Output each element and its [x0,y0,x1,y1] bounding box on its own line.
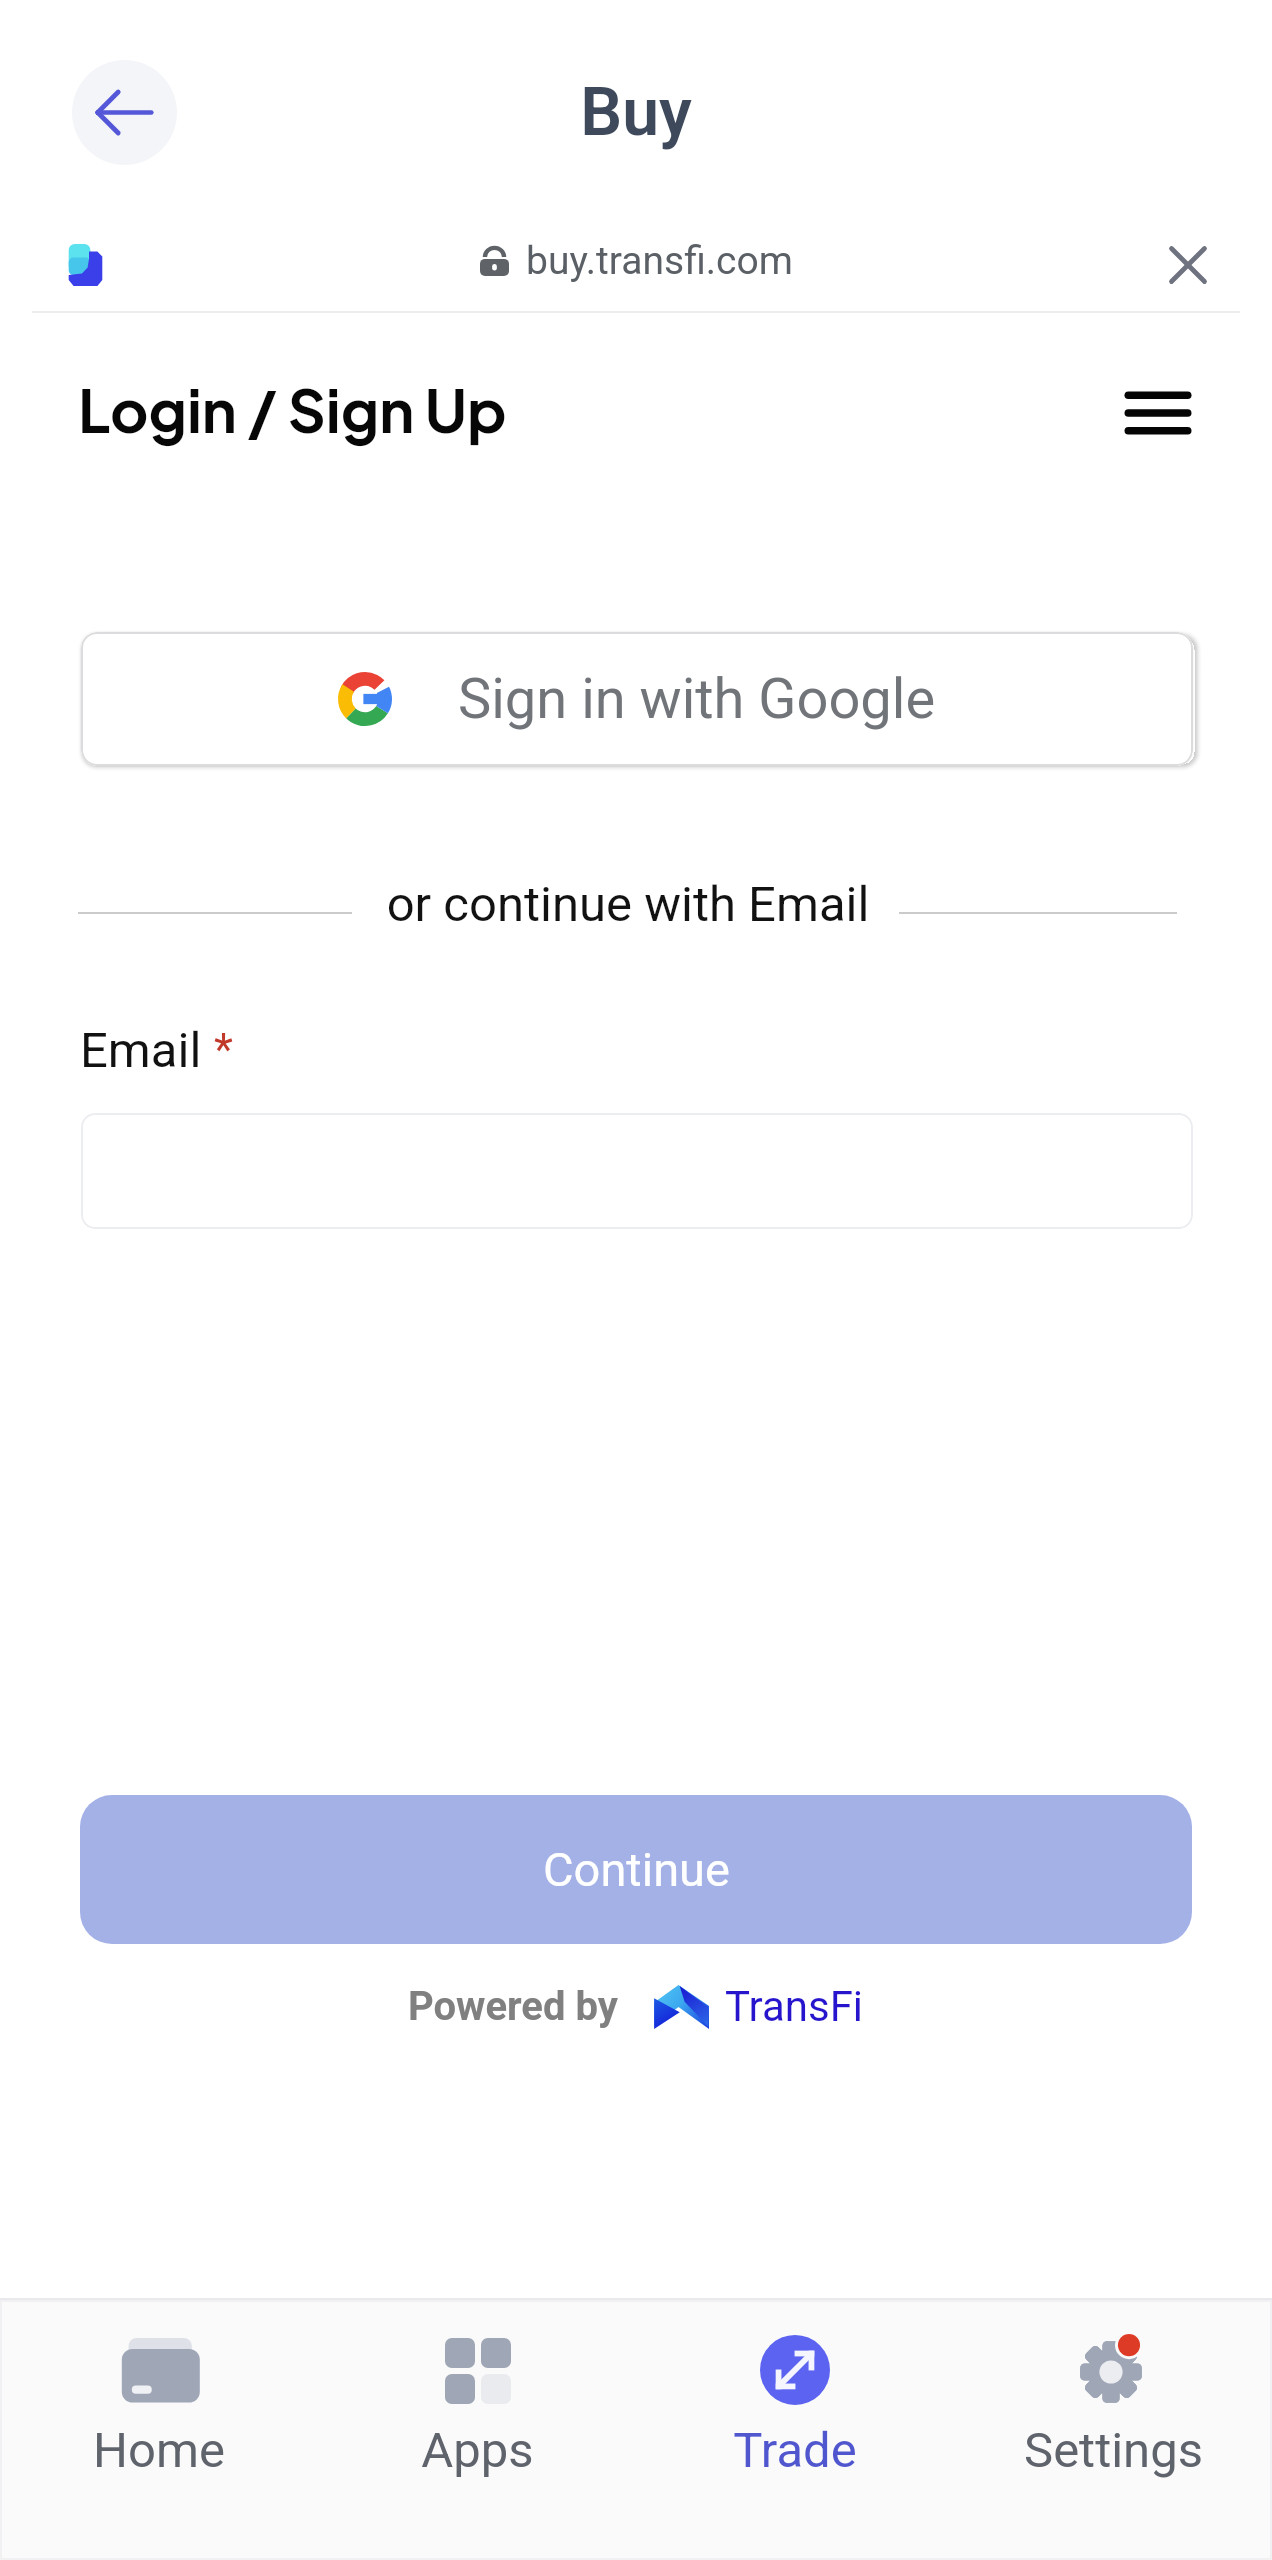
staticText: Buy [0,74,1272,151]
staticText: Powered by [408,1983,618,2030]
button[interactable]: Apps [318,2300,636,2560]
staticText: Sign in with Google [458,666,936,732]
button[interactable] [81,1113,1193,1229]
staticText: Login / Sign Up [78,372,507,446]
staticText: TransFi [725,1982,864,2031]
staticText: Settings [1024,2422,1203,2479]
button[interactable]: Trade [636,2300,954,2560]
staticText: Continue [543,1842,730,1897]
staticText: Email [80,1022,202,1079]
button[interactable]: Home [0,2300,318,2560]
button[interactable]: Menu [1113,380,1203,446]
staticText: Trade [733,2422,857,2479]
button[interactable]: Continue [80,1795,1192,1944]
staticText: Apps [421,2422,534,2479]
button[interactable]: Close [1163,240,1213,290]
staticText: or continue with Email [0,876,1264,933]
button[interactable]: Back [72,60,177,165]
button[interactable]: Sign in with Google [81,632,1193,766]
staticText: * [214,1024,233,1076]
button[interactable]: Settings [954,2300,1272,2560]
staticText: Home [93,2422,225,2479]
staticText: buy.transfi.com [526,238,793,284]
